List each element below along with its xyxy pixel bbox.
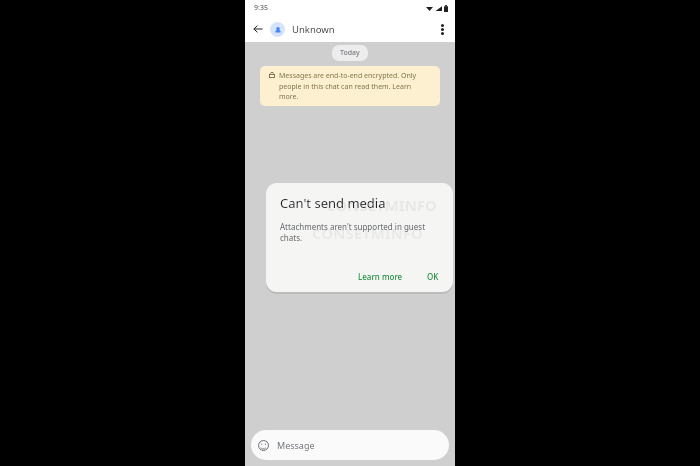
staticText: Today [340, 48, 360, 58]
button[interactable]: Learn more [353, 268, 408, 285]
button[interactable]: Today [332, 45, 368, 61]
button[interactable]: Message [251, 430, 449, 460]
staticText: OK [427, 271, 439, 282]
staticText: Attachments aren't supported in guest ch… [280, 221, 437, 243]
staticText: Learn more [358, 271, 403, 282]
staticText: Message [277, 439, 315, 451]
button[interactable]: OK [422, 268, 444, 285]
staticText: Unknown [292, 23, 335, 36]
staticText: Messages are end-to-end encrypted. Only … [279, 71, 431, 101]
button[interactable]: Back [249, 20, 267, 38]
button[interactable]: More options [431, 18, 453, 40]
staticText: 9:35 [254, 3, 268, 13]
staticText: CONSETMINFO [312, 223, 423, 243]
staticText: Can't send media [280, 194, 386, 212]
staticText: CONSETMINFO [326, 195, 437, 215]
button[interactable]: Unknown [270, 22, 339, 37]
button[interactable]: Messages are end-to-end encrypted. Only … [260, 66, 440, 106]
